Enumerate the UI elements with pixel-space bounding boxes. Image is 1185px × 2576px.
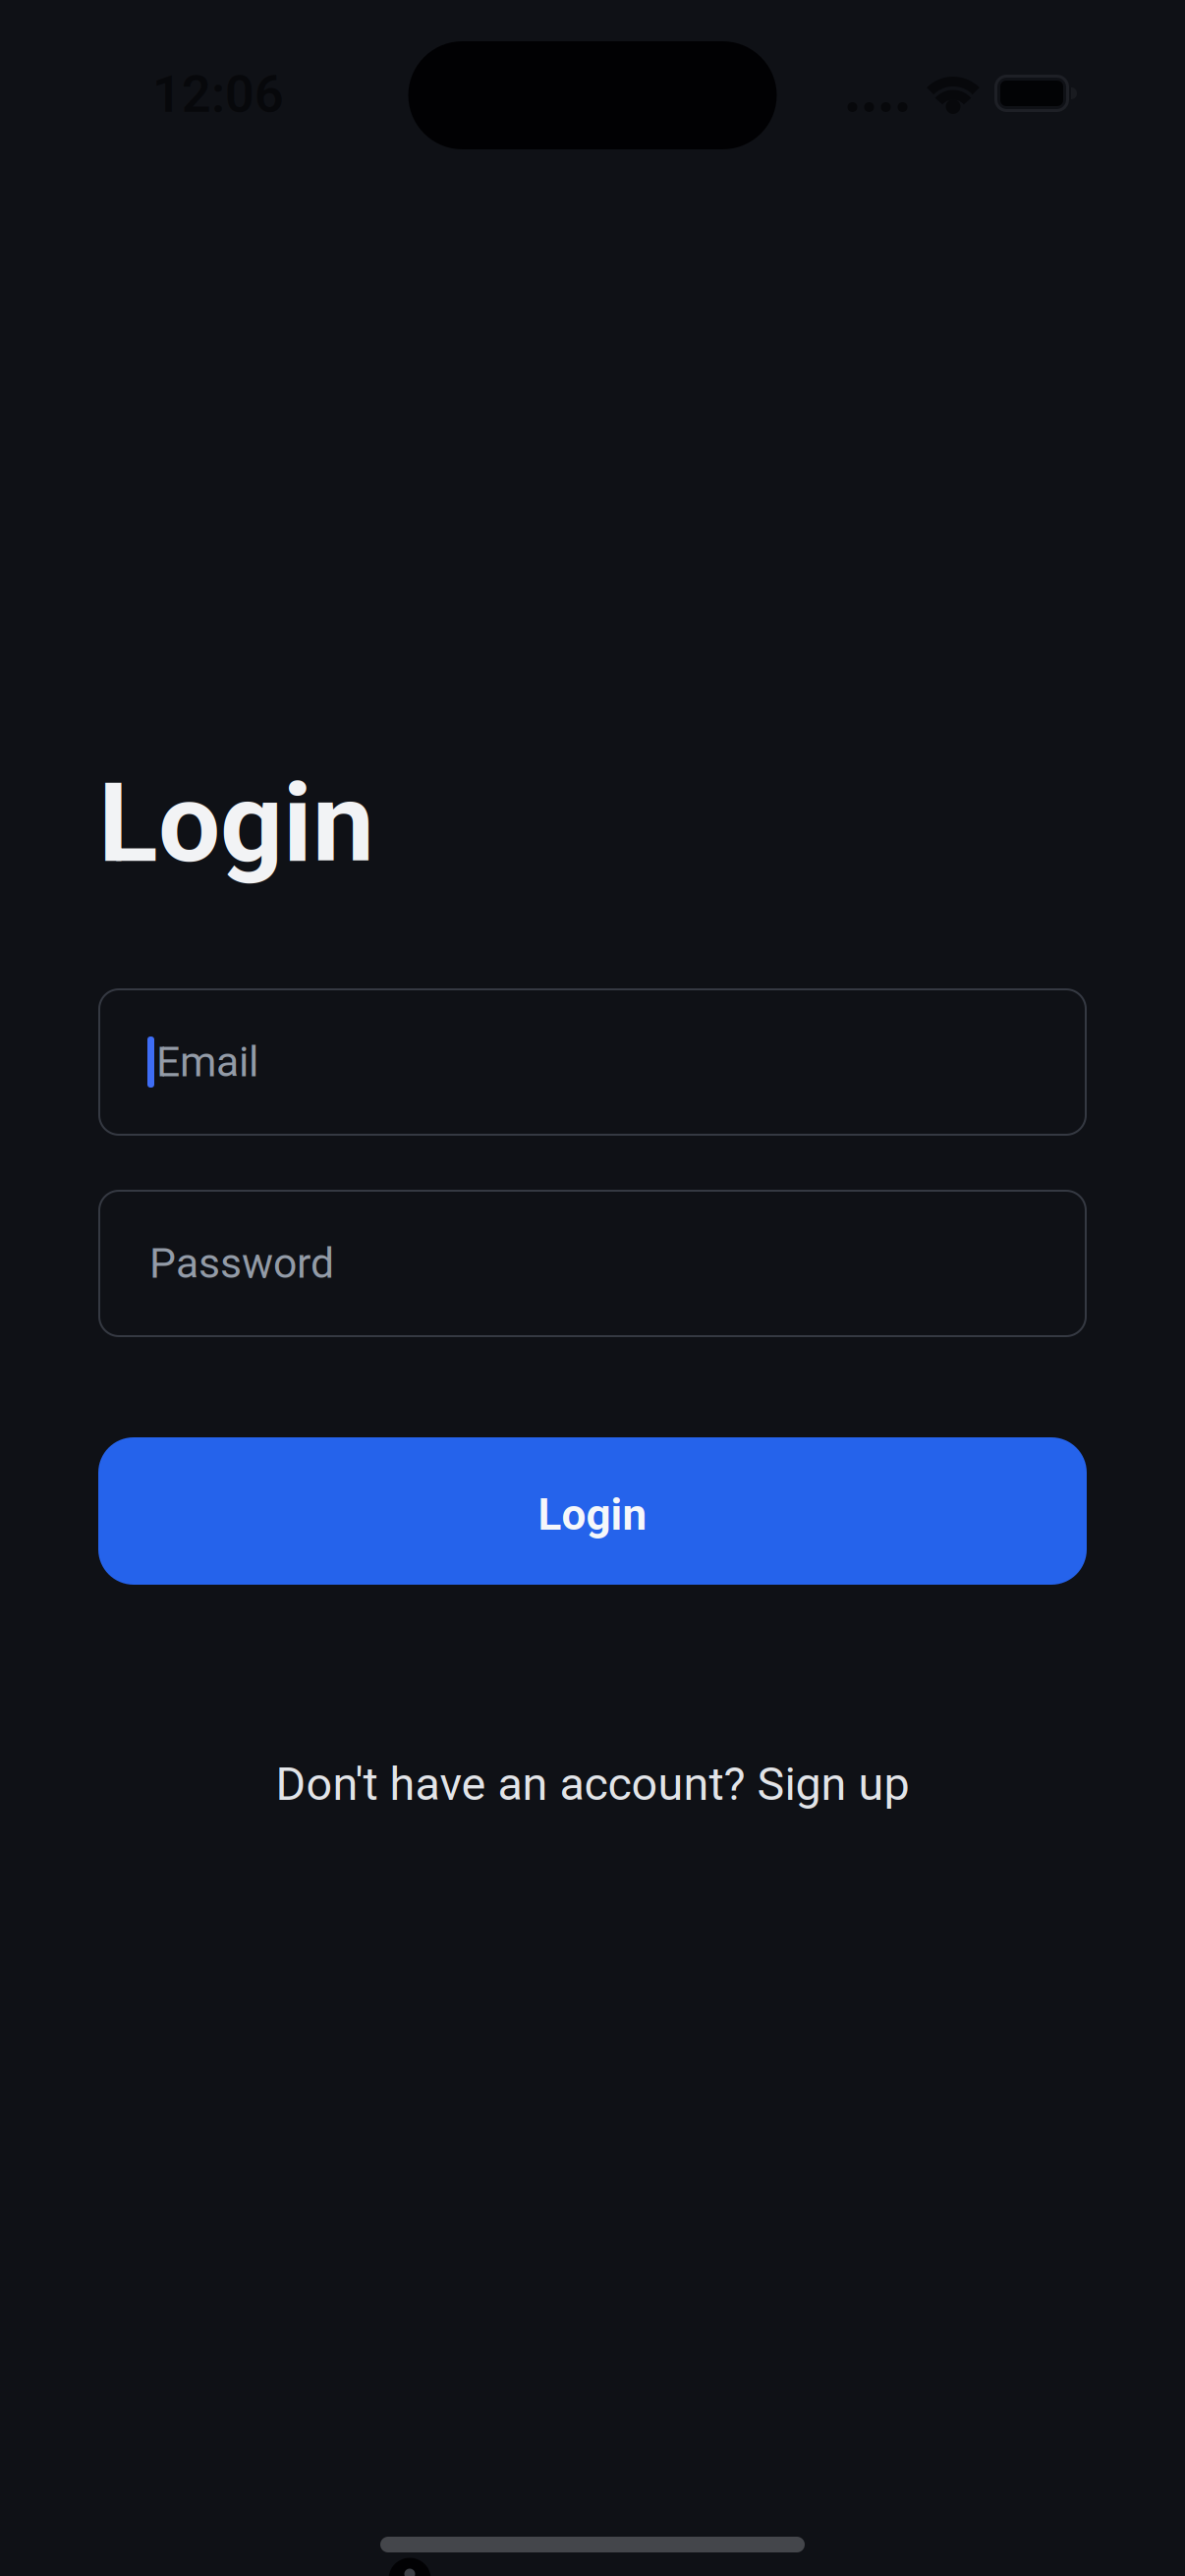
staticText: Password (149, 1239, 334, 1288)
staticText: Login (98, 759, 374, 888)
button[interactable]: Login (98, 1437, 1087, 1585)
staticText: Email (156, 1037, 258, 1087)
staticText: 12:06 (152, 64, 284, 124)
button[interactable]: Email (98, 988, 1087, 1136)
staticText: Login (538, 1490, 647, 1540)
staticText: Don't have an account? Sign up (276, 1757, 909, 1811)
button[interactable]: Password (98, 1190, 1087, 1337)
button[interactable]: Don't have an account? Sign up (276, 1757, 909, 1811)
